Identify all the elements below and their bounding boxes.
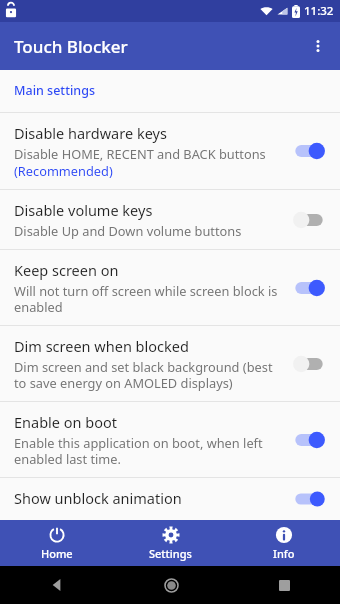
- staticText: Keep screen on: [14, 260, 119, 280]
- staticText: Will not turn off screen while screen bl…: [14, 282, 280, 315]
- staticText: Disable Up and Down volume buttons: [14, 222, 242, 239]
- button[interactable]: On: [290, 428, 328, 452]
- button[interactable]: Settings: [114, 520, 227, 566]
- button[interactable]: Dim screen when blocked: [0, 326, 340, 401]
- staticText: Main settings: [14, 82, 95, 99]
- staticText: Info: [273, 546, 295, 561]
- staticText: 11:32: [304, 3, 334, 19]
- staticText: Show unblock animation: [14, 488, 182, 508]
- button[interactable]: On: [290, 139, 328, 163]
- button[interactable]: Show unblock animation: [0, 478, 340, 520]
- staticText: Disable hardware keys: [14, 123, 167, 143]
- button[interactable]: More options: [296, 24, 340, 68]
- button[interactable]: Home: [0, 520, 114, 566]
- staticText: Disable HOME, RECENT and BACK buttons: [14, 145, 266, 162]
- button[interactable]: Off: [290, 352, 328, 376]
- button[interactable]: Disable volume keys: [0, 190, 340, 249]
- button[interactable]: Keep screen on: [0, 250, 340, 325]
- staticText: (Recommended): [14, 162, 113, 179]
- button[interactable]: On: [290, 276, 328, 300]
- button[interactable]: Disable hardware keys: [0, 113, 340, 189]
- staticText: Dim screen when blocked: [14, 336, 189, 356]
- button[interactable]: On: [290, 488, 328, 510]
- staticText: Touch Blocker: [14, 35, 128, 58]
- button[interactable]: Info: [227, 520, 340, 566]
- button[interactable]: Enable on boot: [0, 402, 340, 477]
- button[interactable]: Recent apps: [267, 568, 301, 602]
- staticText: Dim screen and set black background (bes…: [14, 358, 280, 391]
- staticText: Home: [41, 546, 73, 561]
- staticText: Enable this application on boot, when le…: [14, 434, 280, 467]
- button[interactable]: Back: [40, 568, 74, 602]
- button[interactable]: Home: [154, 568, 188, 602]
- button[interactable]: Off: [290, 208, 328, 232]
- staticText: Enable on boot: [14, 412, 117, 432]
- staticText: Settings: [149, 546, 192, 561]
- staticText: Disable volume keys: [14, 200, 153, 220]
